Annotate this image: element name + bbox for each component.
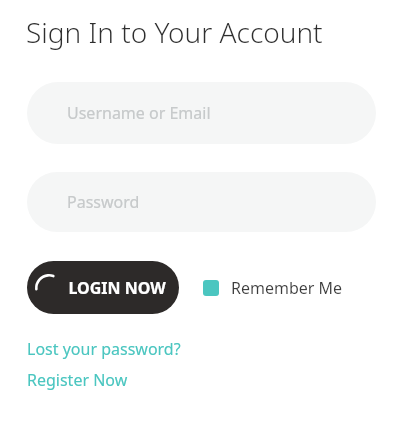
staticText: Sign In to Your Account — [26, 13, 323, 51]
staticText: Lost your password? — [27, 338, 181, 360]
button[interactable]: LOGIN NOW — [27, 261, 179, 314]
button[interactable]: Password — [27, 172, 376, 232]
staticText: Password — [67, 191, 140, 213]
button[interactable]: Username or Email — [27, 82, 376, 144]
staticText: LOGIN NOW — [68, 277, 166, 299]
staticText: Register Now — [27, 369, 128, 391]
button[interactable]: Remember Me — [203, 277, 343, 299]
button[interactable]: Register Now — [27, 369, 128, 391]
staticText: Remember Me — [231, 277, 343, 299]
button[interactable]: Lost your password? — [27, 338, 181, 360]
staticText: Username or Email — [67, 102, 211, 124]
